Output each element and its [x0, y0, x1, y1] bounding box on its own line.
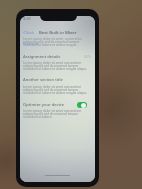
button[interactable]: Assignment details	[20, 54, 95, 60]
staticText: 30 %	[84, 55, 91, 59]
button[interactable]: Read more	[23, 42, 39, 46]
staticText: Lorem ipsum dolor sit amet, consectetur …	[23, 37, 91, 47]
staticText: Another section title	[23, 77, 63, 83]
staticText: Back	[26, 30, 35, 34]
staticText: Lorem ipsum dolor sit amet consectetur a…	[23, 109, 91, 119]
staticText: Optimize your device	[23, 102, 65, 108]
button[interactable]: Optimize your device	[20, 101, 95, 108]
staticText: Best Built-in Mixer	[39, 29, 77, 35]
other: Back	[23, 31, 25, 34]
staticText: Lorem ipsum dolor sit amet consectetur a…	[23, 85, 91, 95]
button[interactable]: Back	[20, 29, 38, 35]
staticText: Assignment details	[23, 54, 61, 60]
staticText: 9:41	[23, 16, 31, 21]
staticText: Lorem ipsum dolor sit amet consectetur a…	[23, 61, 91, 71]
